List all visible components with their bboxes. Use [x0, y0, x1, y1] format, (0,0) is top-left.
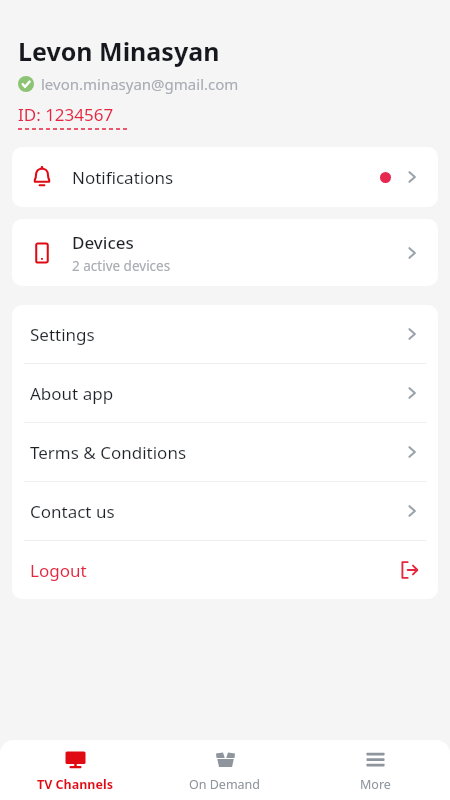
staticText: Logout [30, 559, 87, 582]
button[interactable]: Contact us [12, 482, 438, 540]
button[interactable]: TV Channels [0, 743, 150, 797]
button[interactable]: About app [12, 364, 438, 422]
button[interactable]: Logout [12, 541, 438, 599]
button[interactable]: Terms & Conditions [12, 423, 438, 481]
staticText: ID: 1234567 [18, 103, 114, 126]
staticText: Levon Minasyan [18, 34, 220, 68]
staticText: 2 active devices [72, 257, 171, 275]
button[interactable]: Devices [12, 219, 438, 286]
staticText: About app [30, 382, 114, 405]
button[interactable]: ID: 1234567 [18, 103, 129, 130]
staticText: Terms & Conditions [30, 441, 187, 464]
staticText: levon.minasyan@gmail.com [41, 74, 239, 94]
button[interactable]: More [300, 743, 450, 797]
staticText: Settings [30, 323, 95, 346]
staticText: Notifications [72, 166, 174, 189]
staticText: TV Channels [37, 776, 113, 793]
staticText: More [360, 776, 391, 793]
button[interactable]: Notifications [12, 147, 438, 207]
staticText: Contact us [30, 500, 115, 523]
staticText: Devices [72, 231, 134, 254]
staticText: On Demand [189, 776, 261, 793]
button[interactable]: On Demand [150, 743, 300, 797]
button[interactable]: Settings [12, 305, 438, 363]
